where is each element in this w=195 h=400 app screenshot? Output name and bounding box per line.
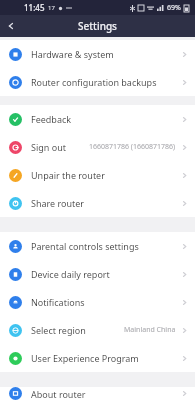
staticText: 69%: [167, 3, 181, 13]
staticText: About router: [31, 388, 86, 400]
staticText: Parental controls settings: [31, 240, 139, 252]
staticText: Select region: [31, 324, 86, 336]
button[interactable]: Sign out: [0, 133, 195, 161]
button[interactable]: About router: [0, 387, 195, 400]
button[interactable]: Unpair the router: [0, 161, 195, 189]
button[interactable]: Parental controls settings: [0, 232, 195, 260]
button[interactable]: Feedback: [0, 105, 195, 133]
button[interactable]: Notifications: [0, 288, 195, 316]
staticText: 17: [48, 4, 55, 12]
staticText: Settings: [78, 19, 117, 33]
button[interactable]: Share router: [0, 189, 195, 217]
button[interactable]: Device daily report: [0, 260, 195, 288]
staticText: Unpair the router: [31, 169, 105, 181]
staticText: 1660871786 (1660871786): [89, 142, 176, 152]
button[interactable]: Back: [0, 15, 22, 37]
staticText: Hardware & system: [31, 48, 114, 60]
staticText: Sign out: [31, 141, 66, 153]
button[interactable]: Hardware & system: [0, 40, 195, 68]
staticText: User Experience Program: [31, 352, 139, 364]
button[interactable]: User Experience Program: [0, 344, 195, 372]
button[interactable]: Router configuration backups: [0, 68, 195, 96]
staticText: Device daily report: [31, 268, 110, 280]
button[interactable]: Select region: [0, 316, 195, 344]
staticText: Notifications: [31, 296, 85, 308]
staticText: 11:45: [24, 2, 45, 13]
staticText: Router configuration backups: [31, 76, 157, 88]
staticText: Mainland China: [124, 325, 176, 335]
staticText: Feedback: [31, 113, 72, 125]
staticText: Share router: [31, 197, 85, 209]
